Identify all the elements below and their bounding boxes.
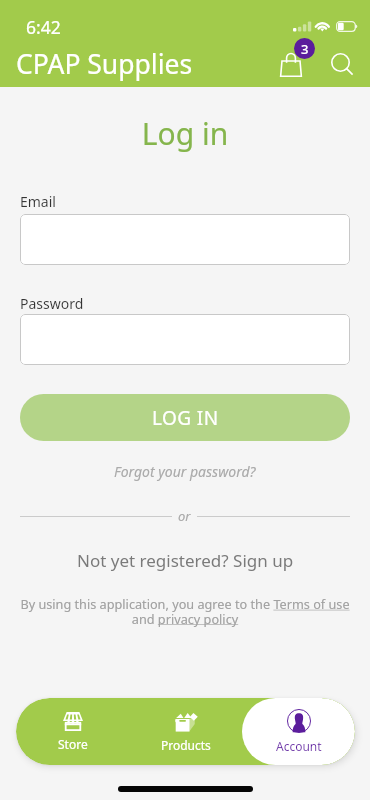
staticText: Products	[161, 737, 211, 753]
button[interactable]	[20, 314, 350, 365]
staticText: 3	[301, 40, 309, 58]
staticText: 6:42	[26, 15, 61, 39]
button[interactable]: Account	[242, 698, 355, 765]
button[interactable]: Search	[322, 43, 360, 81]
staticText: By using this application, you agree to …	[14, 595, 356, 627]
button[interactable]: Not yet registered? Sign up	[77, 549, 294, 572]
staticText: Password	[20, 294, 84, 313]
button[interactable]: LOG IN	[20, 394, 350, 441]
staticText: Log in	[0, 113, 370, 154]
staticText: Account	[276, 738, 322, 754]
staticText: LOG IN	[152, 405, 219, 431]
button[interactable]: Products	[129, 698, 242, 765]
button[interactable]	[20, 214, 350, 265]
button[interactable]: Shopping bag, 3 items	[274, 38, 316, 80]
staticText: CPAP Supplies	[16, 46, 193, 82]
staticText: or	[178, 507, 191, 525]
staticText: Email	[20, 192, 56, 211]
staticText: Store	[58, 736, 88, 752]
button[interactable]: Store	[16, 698, 129, 765]
button[interactable]: Forgot your password?	[114, 462, 256, 481]
